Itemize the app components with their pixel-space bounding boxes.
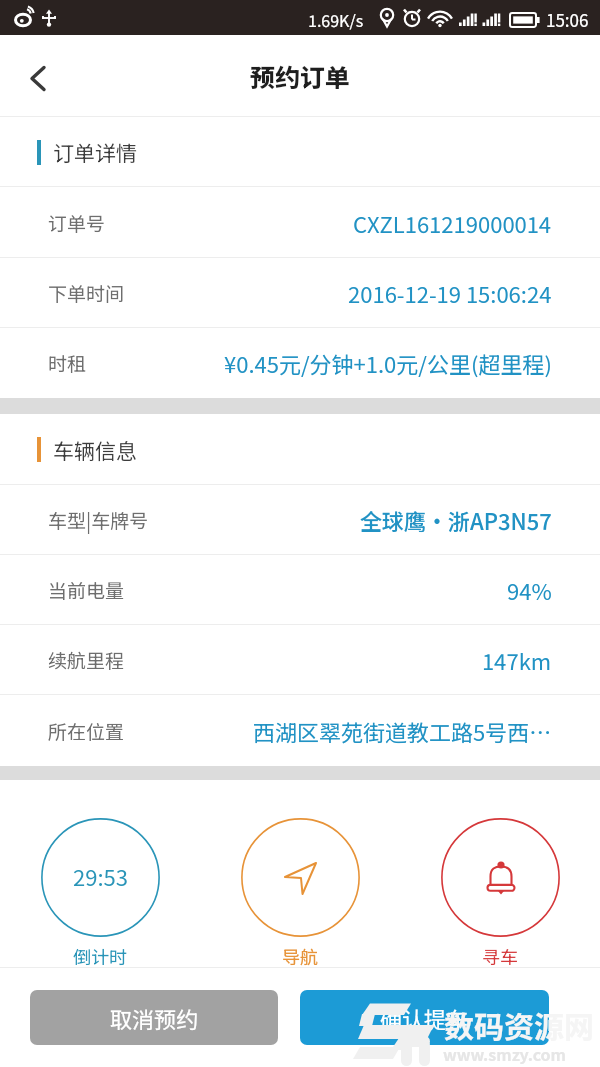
staticText: 取消预约 (110, 1002, 199, 1034)
staticText: 西湖区翠苑街道教工路5号西… (253, 715, 552, 747)
button[interactable]: 订单号 (0, 187, 600, 258)
staticText: 寻车 (482, 943, 518, 969)
staticText: 29:53 (73, 860, 128, 892)
staticText: 订单详情 (53, 137, 137, 167)
button[interactable]: Find car (440, 818, 560, 969)
staticText: 当前电量 (48, 576, 125, 604)
button[interactable]: 下单时间 (0, 258, 600, 328)
staticText: 订单号 (48, 209, 106, 237)
staticText: 确认提车 (380, 1002, 469, 1034)
staticText: ¥0.45元/分钟+1.0元/公里(超里程) (224, 347, 552, 379)
staticText: 导航 (282, 943, 318, 969)
button[interactable]: 所在位置 (0, 695, 600, 766)
button[interactable]: Navigate (240, 818, 360, 969)
staticText: www.smzy.com (443, 1042, 566, 1065)
staticText: 续航里程 (48, 646, 125, 674)
staticText: 预约订单 (250, 58, 351, 94)
staticText: 1.69K/s (308, 8, 364, 31)
staticText: 车辆信息 (53, 435, 137, 465)
staticText: 车型|车牌号 (48, 506, 149, 534)
button[interactable]: 当前电量 (0, 555, 600, 625)
staticText: CXZL161219000014 (353, 207, 552, 239)
staticText: 下单时间 (48, 279, 125, 307)
staticText: 所在位置 (48, 717, 125, 745)
staticText: 时租 (48, 349, 87, 377)
staticText: 147km (482, 644, 552, 676)
staticText: 数码资源网 (444, 1003, 594, 1046)
staticText: 15:06 (546, 7, 589, 32)
staticText: 全球鹰·浙AP3N57 (360, 504, 552, 536)
staticText: 倒计时 (73, 943, 127, 969)
button[interactable]: 车型|车牌号 (0, 485, 600, 555)
staticText: 94% (507, 574, 552, 606)
button[interactable]: 确认提车 (300, 990, 549, 1045)
button[interactable]: 取消预约 (30, 990, 278, 1045)
button[interactable]: 时租 (0, 328, 600, 398)
staticText: 2016-12-19 15:06:24 (348, 277, 552, 309)
button[interactable]: 续航里程 (0, 625, 600, 695)
button[interactable]: Countdown (40, 818, 160, 969)
button[interactable]: Back (0, 35, 72, 117)
